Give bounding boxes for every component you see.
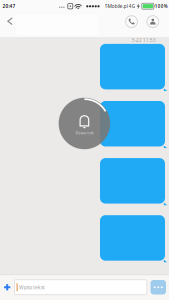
button[interactable]: Contact info (144, 13, 161, 30)
staticText: 100% (155, 3, 168, 9)
staticText: Dzwonek (75, 130, 93, 135)
staticText: Wpisz tekst (19, 284, 45, 291)
button[interactable]: Call (123, 13, 140, 30)
staticText: 5-22 11:53 (132, 37, 156, 43)
staticText: 20:47 (2, 3, 15, 9)
button[interactable]: Add attachment (0, 274, 14, 300)
button[interactable]: Back (2, 12, 17, 30)
staticText: T-Mobile.pl 4G (105, 3, 135, 9)
button[interactable]: More (150, 280, 166, 294)
